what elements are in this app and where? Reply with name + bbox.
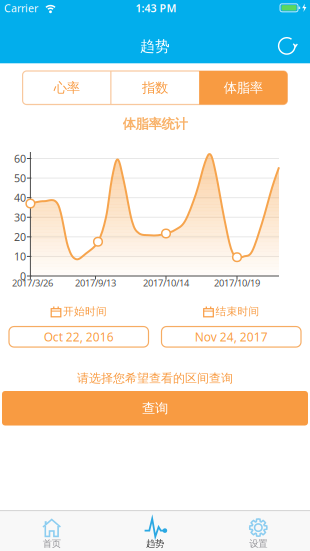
- staticText: 2017/3/26: [12, 277, 53, 289]
- staticText: 体脂率: [224, 80, 263, 96]
- button[interactable]: Oct 22, 2016: [9, 327, 148, 347]
- staticText: 30: [14, 210, 26, 224]
- button[interactable]: 刷新: [272, 31, 301, 60]
- button[interactable]: 首页: [0, 511, 103, 551]
- button[interactable]: 查询: [2, 391, 308, 425]
- staticText: 0: [20, 269, 26, 283]
- staticText: 20: [14, 230, 26, 244]
- staticText: Oct 22, 2016: [44, 329, 114, 345]
- button[interactable]: 心率: [23, 71, 111, 104]
- staticText: 设置: [249, 538, 267, 549]
- button[interactable]: 指数: [111, 71, 199, 104]
- staticText: 50: [14, 171, 26, 185]
- staticText: Carrier: [4, 1, 38, 15]
- button[interactable]: Nov 24, 2017: [161, 327, 301, 347]
- button[interactable]: 体脂率: [199, 71, 287, 104]
- staticText: 开始时间: [63, 305, 107, 318]
- staticText: 60: [14, 151, 26, 166]
- staticText: 心率: [54, 80, 80, 96]
- staticText: 体脂率统计: [122, 116, 187, 132]
- staticText: 40: [14, 191, 26, 205]
- staticText: 请选择您希望查看的区间查询: [77, 371, 233, 386]
- staticText: 趋势: [140, 37, 170, 55]
- staticText: 2017/9/13: [75, 277, 116, 289]
- staticText: 2017/10/14: [143, 277, 189, 289]
- staticText: 查询: [142, 400, 168, 416]
- staticText: Nov 24, 2017: [195, 329, 268, 345]
- button[interactable]: 趋势: [103, 511, 206, 551]
- staticText: 趋势: [146, 538, 164, 549]
- staticText: 2017/10/19: [214, 277, 260, 289]
- button[interactable]: 设置: [207, 511, 310, 551]
- staticText: 1:43 PM: [135, 1, 176, 15]
- staticText: 10: [14, 249, 26, 263]
- staticText: 首页: [43, 538, 61, 549]
- staticText: 结束时间: [215, 305, 259, 318]
- staticText: 指数: [142, 80, 168, 96]
